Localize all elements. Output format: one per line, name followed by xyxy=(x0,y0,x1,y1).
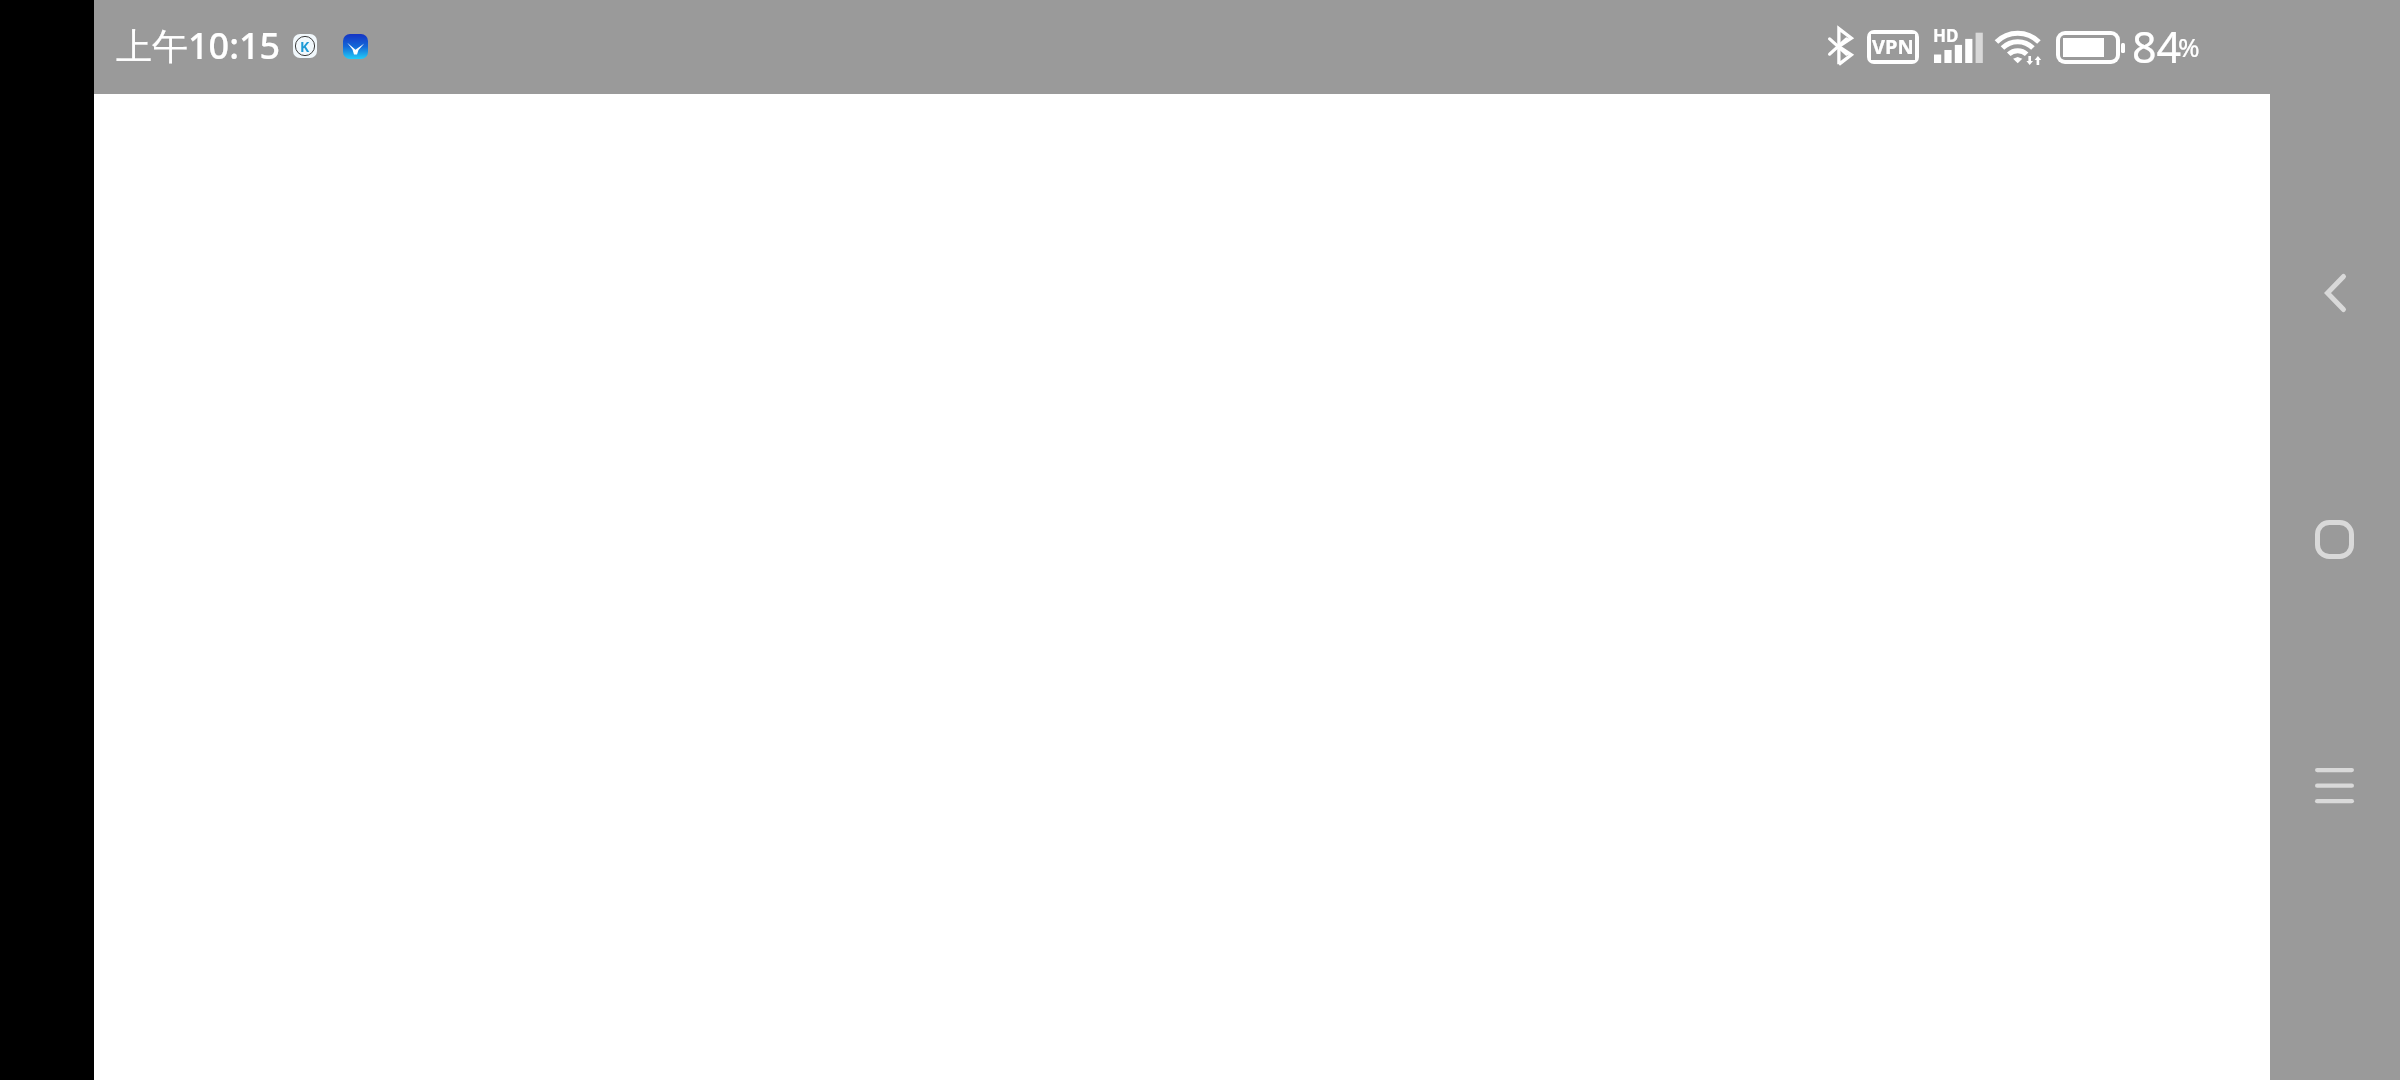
staticText: 84 xyxy=(2132,17,2182,76)
staticText: % xyxy=(2178,29,2200,64)
staticText: K xyxy=(300,37,310,56)
staticText: VPN xyxy=(1872,33,1914,59)
button[interactable]: Home xyxy=(2294,499,2374,579)
button[interactable]: Recent apps xyxy=(2294,746,2374,826)
staticText: HD xyxy=(1933,24,1959,47)
staticText: 上午10:15 xyxy=(116,21,281,70)
button[interactable]: Back xyxy=(2295,253,2375,333)
